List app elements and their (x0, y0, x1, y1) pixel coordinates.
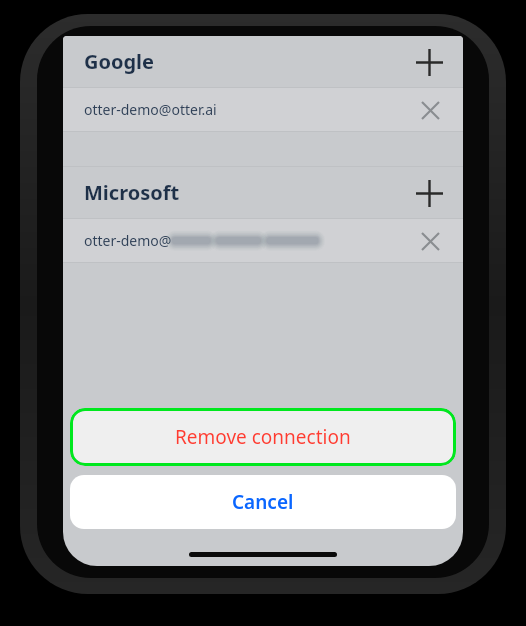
staticText: Microsoft (84, 179, 180, 206)
button[interactable]: otter-demo@otter.ai (63, 88, 463, 131)
button[interactable]: Remove account (411, 91, 449, 129)
staticText: Cancel (232, 489, 294, 515)
button[interactable]: Cancel (70, 475, 456, 529)
button[interactable]: Google (63, 36, 463, 87)
staticText: Google (84, 48, 155, 75)
button[interactable]: otter-demo@ (63, 219, 463, 262)
staticText: Remove connection (175, 424, 351, 450)
button[interactable]: Remove account (411, 222, 449, 260)
button[interactable]: Microsoft (63, 167, 463, 218)
button[interactable]: Remove connection (73, 411, 453, 463)
staticText: otter-demo@ (84, 231, 172, 250)
button[interactable]: Add Microsoft account (409, 173, 449, 213)
button[interactable]: Add Google account (409, 42, 449, 82)
staticText: otter-demo@otter.ai (84, 100, 217, 119)
